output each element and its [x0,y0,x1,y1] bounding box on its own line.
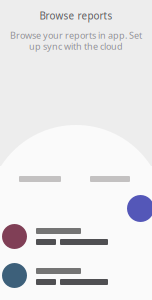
staticText: Browse your reports in app. Set [10,29,142,41]
staticText: Browse reports [39,9,112,22]
staticText: up sync with the cloud [29,40,123,52]
